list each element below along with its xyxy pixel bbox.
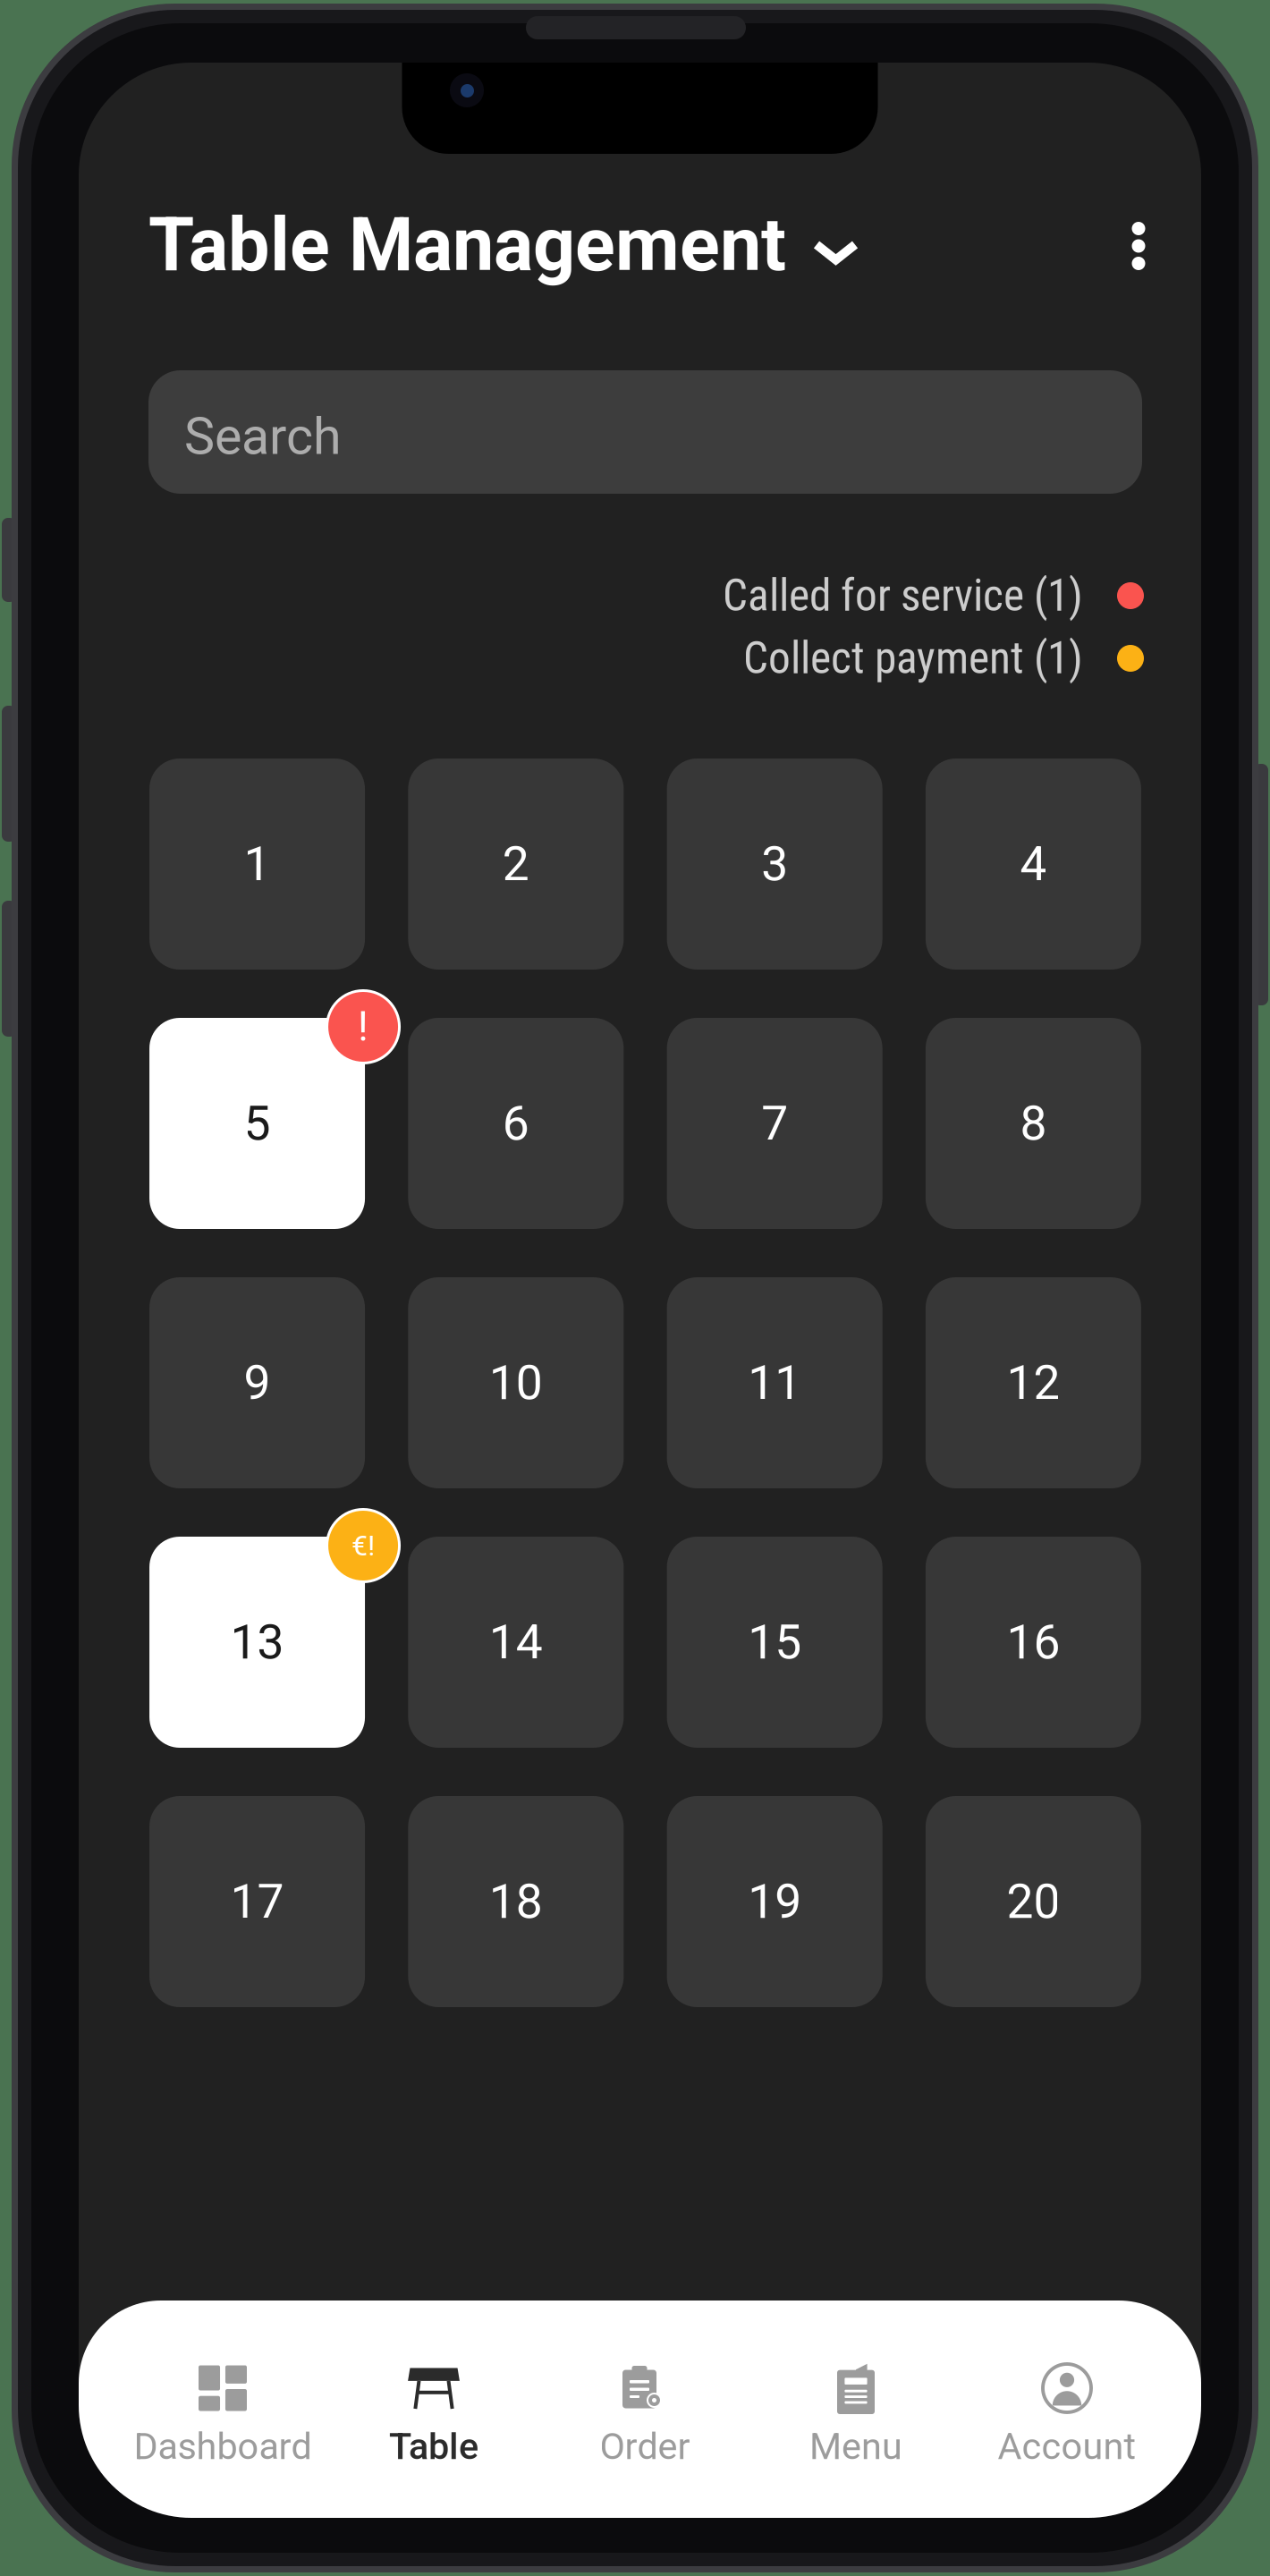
staticText: 20 — [1007, 1874, 1060, 1930]
button[interactable]: Order — [539, 2301, 750, 2518]
staticText: 18 — [489, 1874, 543, 1930]
staticText: 12 — [1007, 1355, 1060, 1411]
staticText: 16 — [1007, 1614, 1060, 1670]
button[interactable]: 19 — [667, 1796, 882, 2007]
staticText: 13 — [230, 1614, 284, 1670]
staticText: 14 — [489, 1614, 543, 1670]
button[interactable]: 16 — [926, 1537, 1141, 1748]
button[interactable]: 5 — [149, 1018, 365, 1229]
staticText: Collect payment (1) — [743, 632, 1083, 684]
button[interactable]: 20 — [926, 1796, 1141, 2007]
staticText: Menu — [809, 2425, 902, 2468]
staticText: Table Management — [148, 202, 786, 288]
staticText: 5 — [244, 1096, 271, 1151]
staticText: 15 — [748, 1614, 801, 1670]
button[interactable]: Search — [148, 370, 1142, 494]
button[interactable]: 11 — [667, 1277, 882, 1488]
button[interactable]: 15 — [667, 1537, 882, 1748]
button[interactable]: 3 — [667, 758, 882, 970]
button[interactable]: 4 — [926, 758, 1141, 970]
staticText: 2 — [502, 836, 529, 892]
staticText: 9 — [244, 1355, 271, 1411]
button[interactable]: 6 — [408, 1018, 624, 1229]
staticText: Account — [998, 2425, 1136, 2468]
button[interactable]: 2 — [408, 758, 624, 970]
button[interactable]: 10 — [408, 1277, 624, 1488]
button[interactable]: Menu — [750, 2301, 961, 2518]
staticText: 17 — [230, 1874, 284, 1930]
staticText: 3 — [761, 836, 788, 892]
button[interactable]: Table — [328, 2301, 539, 2518]
staticText: 10 — [489, 1355, 543, 1411]
button[interactable]: 9 — [149, 1277, 365, 1488]
button[interactable]: 7 — [667, 1018, 882, 1229]
staticText: 8 — [1020, 1096, 1047, 1151]
button[interactable]: Dashboard — [117, 2301, 328, 2518]
staticText: 4 — [1020, 836, 1047, 892]
button[interactable]: 17 — [149, 1796, 365, 2007]
staticText: 6 — [502, 1096, 529, 1151]
staticText: 11 — [748, 1355, 801, 1411]
button[interactable]: Table Management — [148, 207, 859, 284]
staticText: 1 — [244, 836, 271, 892]
button[interactable]: 12 — [926, 1277, 1141, 1488]
button[interactable]: 13 — [149, 1537, 365, 1748]
button[interactable]: 18 — [408, 1796, 624, 2007]
staticText: Called for service (1) — [723, 570, 1083, 622]
staticText: €! — [351, 1529, 375, 1562]
staticText: Dashboard — [134, 2425, 312, 2468]
staticText: ! — [358, 1003, 368, 1051]
staticText: 7 — [761, 1096, 788, 1151]
staticText: Search — [184, 406, 342, 467]
button[interactable]: 8 — [926, 1018, 1141, 1229]
staticText: Order — [600, 2425, 690, 2468]
staticText: 19 — [748, 1874, 801, 1930]
button[interactable]: Account — [961, 2301, 1173, 2518]
button[interactable]: 14 — [408, 1537, 624, 1748]
staticText: Table — [389, 2425, 478, 2468]
button[interactable]: 1 — [149, 758, 365, 970]
button[interactable]: More options — [1104, 208, 1173, 284]
